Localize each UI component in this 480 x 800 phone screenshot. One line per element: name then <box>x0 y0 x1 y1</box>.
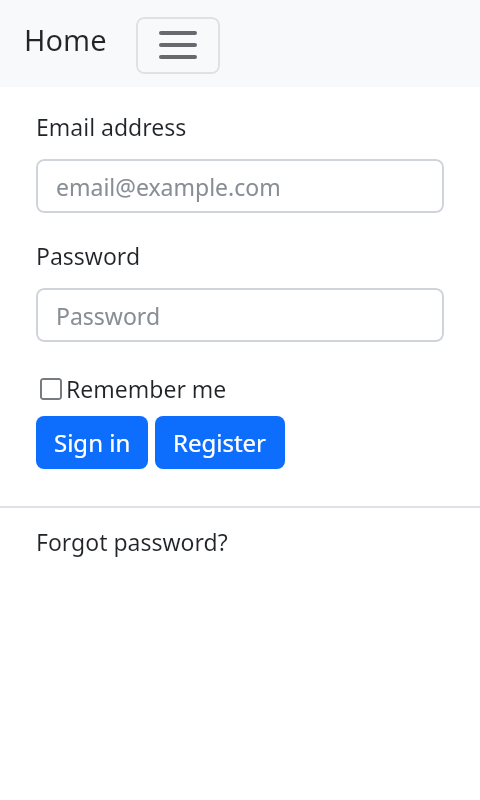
button[interactable] <box>136 17 220 74</box>
staticText: Password <box>56 300 161 331</box>
staticText: email@example.com <box>56 171 281 202</box>
button[interactable]: Forgot password? <box>36 526 228 557</box>
staticText: Home <box>24 20 107 59</box>
button[interactable]: Remember me <box>36 373 227 404</box>
staticText: Remember me <box>66 373 227 404</box>
staticText: Register <box>173 426 267 459</box>
staticText: Password <box>36 240 141 271</box>
staticText: Sign in <box>54 426 131 459</box>
staticText: Email address <box>36 111 187 142</box>
button[interactable]: Register <box>155 416 285 469</box>
button[interactable]: Password <box>36 288 444 342</box>
button[interactable]: Sign in <box>36 416 148 469</box>
button[interactable]: email@example.com <box>36 159 444 213</box>
